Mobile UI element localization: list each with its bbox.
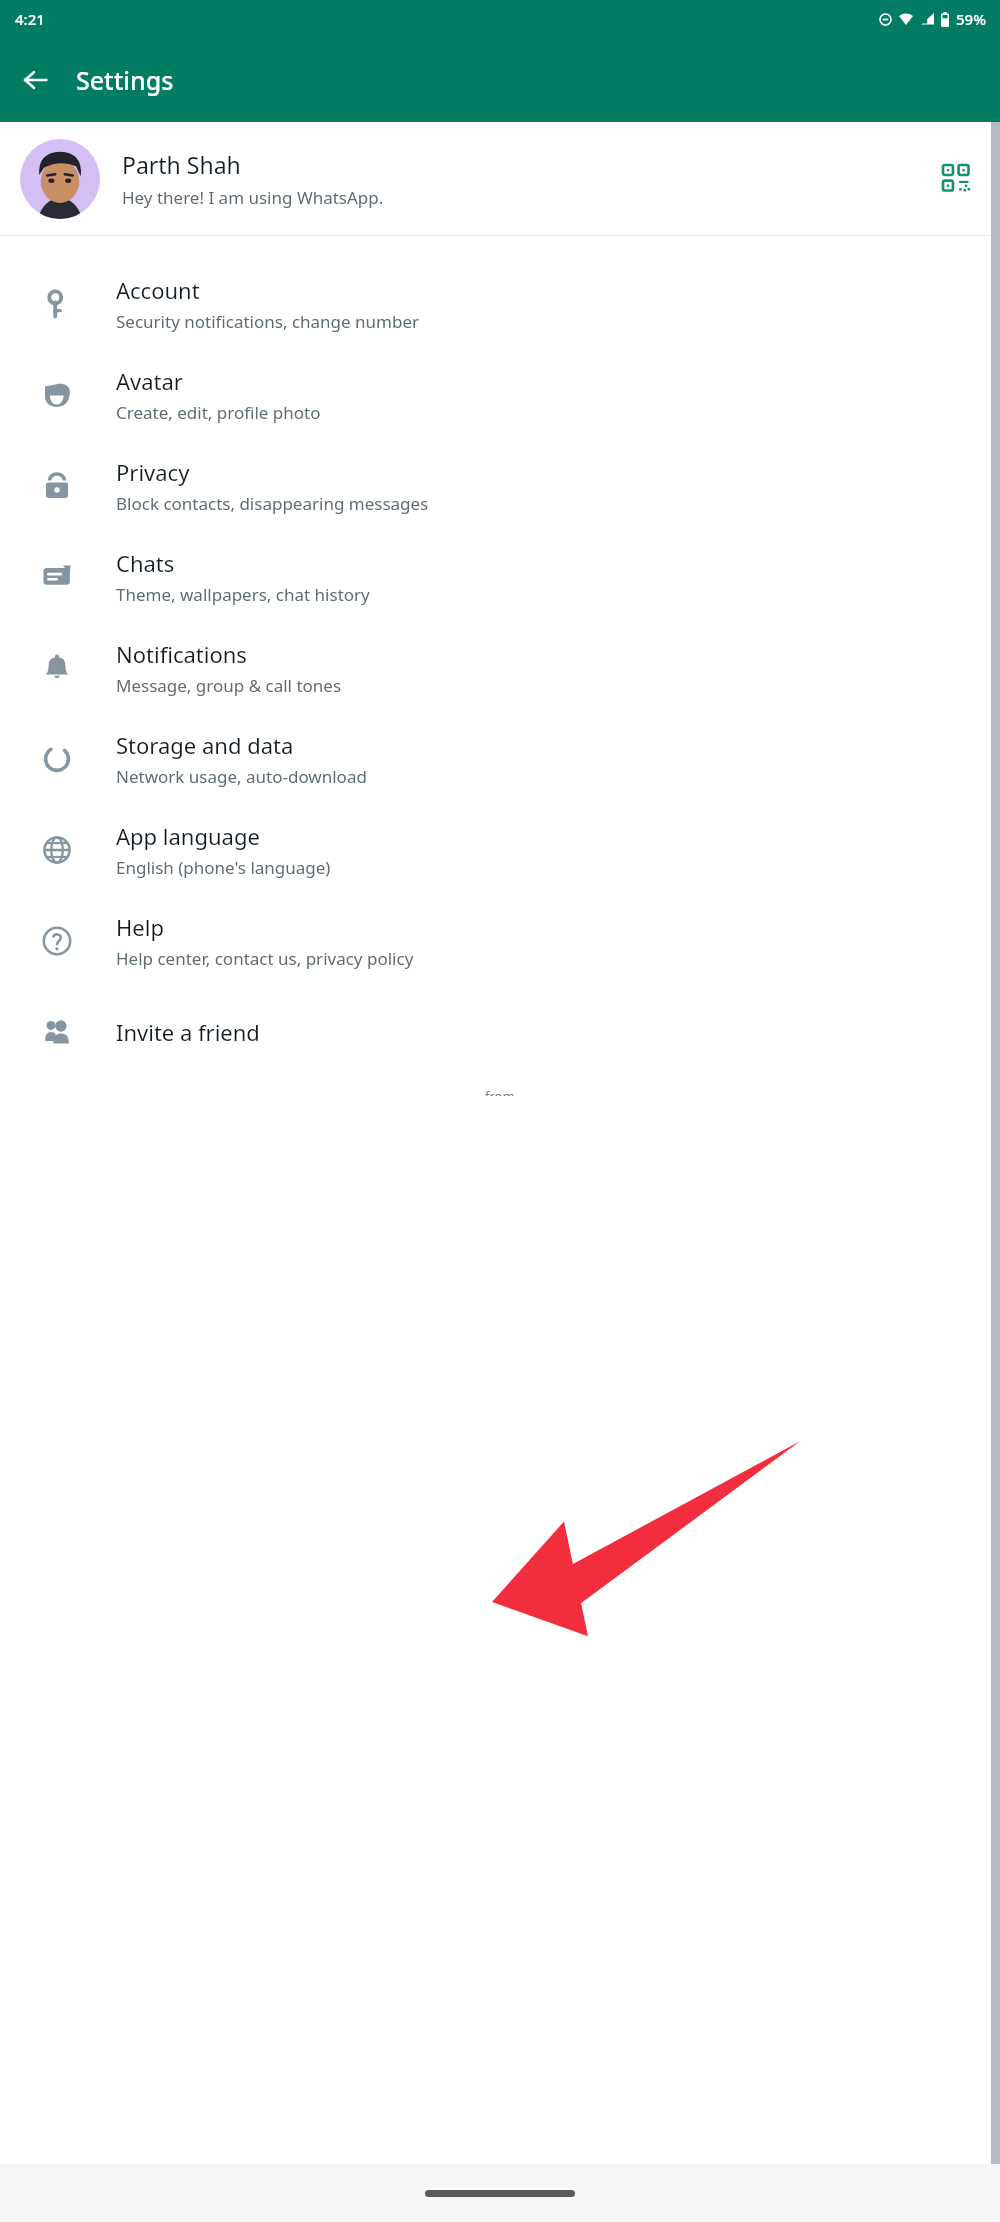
- button[interactable]: Account: [0, 258, 1000, 349]
- button[interactable]: Invite a friend: [0, 986, 1000, 1077]
- staticText: Parth Shah: [122, 149, 241, 180]
- staticText: 4:21: [15, 9, 45, 29]
- button[interactable]: Chats: [0, 531, 1000, 622]
- staticText: Storage and data: [116, 730, 294, 760]
- staticText: Theme, wallpapers, chat history: [116, 583, 370, 606]
- staticText: from: [485, 1087, 515, 1096]
- staticText: Notifications: [116, 639, 247, 669]
- staticText: App language: [116, 821, 260, 851]
- staticText: Block contacts, disappearing messages: [116, 492, 429, 515]
- button[interactable]: Help: [0, 895, 1000, 986]
- staticText: Chats: [116, 548, 175, 578]
- staticText: Message, group & call tones: [116, 674, 342, 697]
- staticText: Invite a friend: [116, 1017, 260, 1047]
- staticText: Privacy: [116, 457, 190, 487]
- staticText: Avatar: [116, 366, 183, 396]
- staticText: Create, edit, profile photo: [116, 401, 321, 424]
- staticText: Hey there! I am using WhatsApp.: [122, 186, 384, 209]
- button[interactable]: App language: [0, 804, 1000, 895]
- staticText: Settings: [76, 63, 174, 97]
- button[interactable]: Privacy: [0, 440, 1000, 531]
- staticText: Help center, contact us, privacy policy: [116, 947, 414, 970]
- staticText: 59%: [956, 9, 986, 29]
- staticText: Security notifications, change number: [116, 310, 420, 333]
- staticText: Network usage, auto-download: [116, 765, 367, 788]
- staticText: Help: [116, 912, 164, 942]
- button[interactable]: Avatar: [0, 349, 1000, 440]
- staticText: English (phone's language): [116, 856, 331, 879]
- button[interactable]: Parth Shah: [0, 122, 1000, 235]
- staticText: Account: [116, 275, 200, 305]
- button[interactable]: Back: [10, 54, 62, 106]
- button[interactable]: Storage and data: [0, 713, 1000, 804]
- button[interactable]: QR code: [934, 156, 980, 202]
- button[interactable]: Notifications: [0, 622, 1000, 713]
